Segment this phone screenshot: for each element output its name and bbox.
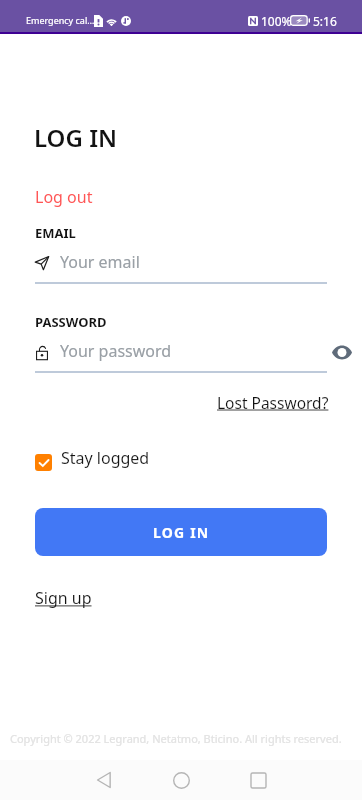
button[interactable]: LOG IN <box>35 508 327 556</box>
button[interactable]: Stay logged <box>35 447 150 469</box>
staticText: Your email <box>60 251 140 273</box>
button[interactable]: Back <box>86 762 122 798</box>
button[interactable]: Home <box>163 762 199 798</box>
staticText: Emergency cal… <box>26 14 95 26</box>
staticText: 5:16 <box>313 13 337 29</box>
button[interactable]: Log out <box>35 186 93 208</box>
staticText: EMAIL <box>35 224 76 242</box>
button[interactable]: Show password <box>327 338 357 366</box>
button[interactable]: Lost Password? <box>217 392 329 413</box>
staticText: 100% <box>261 13 292 29</box>
button[interactable]: Sign up <box>35 587 92 609</box>
staticText: Copyright © 2022 Legrand, Netatmo, Btici… <box>10 731 342 746</box>
staticText: Your password <box>60 340 172 362</box>
staticText: LOG IN <box>34 121 118 154</box>
staticText: Stay logged <box>61 447 150 469</box>
staticText: PASSWORD <box>35 313 107 331</box>
button[interactable]: Recent apps <box>240 762 276 798</box>
staticText: LOG IN <box>153 523 210 542</box>
